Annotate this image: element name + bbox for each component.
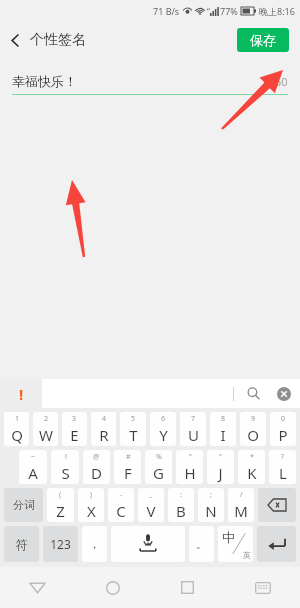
staticText: : bbox=[180, 490, 182, 500]
staticText: M bbox=[234, 501, 248, 521]
button[interactable]: Recents bbox=[150, 567, 225, 608]
staticText: X bbox=[87, 501, 96, 521]
staticText: D bbox=[91, 463, 102, 483]
staticText: 英 bbox=[243, 550, 251, 560]
button[interactable]: 4 bbox=[91, 412, 116, 446]
staticText: 4 bbox=[102, 414, 107, 424]
staticText: 123 bbox=[50, 536, 71, 552]
button[interactable]: " bbox=[207, 450, 234, 484]
staticText: 分词 bbox=[13, 498, 35, 512]
staticText: ! bbox=[19, 384, 24, 404]
button[interactable]: Language bbox=[218, 526, 253, 562]
staticText: 晚上8:16 bbox=[259, 5, 295, 17]
staticText: “ bbox=[207, 6, 210, 17]
staticText: 幸福快乐！ bbox=[12, 73, 77, 89]
button[interactable]: : bbox=[168, 488, 194, 522]
button[interactable]: Back bbox=[0, 567, 75, 608]
staticText: / bbox=[240, 490, 243, 500]
staticText: % bbox=[156, 452, 162, 462]
button[interactable]: - bbox=[108, 488, 134, 522]
staticText: Y bbox=[159, 425, 168, 445]
button[interactable]: Space bbox=[111, 526, 185, 562]
staticText: " bbox=[219, 452, 222, 462]
staticText: L bbox=[279, 463, 287, 483]
staticText: 。 bbox=[196, 537, 207, 551]
button[interactable]: 1 bbox=[4, 412, 29, 446]
button[interactable]: % bbox=[145, 450, 172, 484]
button[interactable]: Back bbox=[0, 25, 30, 55]
button[interactable]: ~ bbox=[19, 450, 47, 484]
button[interactable]: Backspace bbox=[258, 488, 296, 522]
staticText: * bbox=[250, 452, 254, 462]
staticText: 7 bbox=[191, 414, 196, 424]
button[interactable]: 。 bbox=[189, 526, 214, 562]
button[interactable]: ; bbox=[198, 488, 224, 522]
button[interactable]: # bbox=[114, 450, 141, 484]
staticText: R bbox=[99, 425, 109, 445]
button[interactable]: Clear bbox=[268, 379, 300, 408]
button[interactable]: 6 bbox=[150, 412, 176, 446]
button[interactable]: * bbox=[238, 450, 265, 484]
button[interactable]: 符 bbox=[4, 526, 39, 562]
staticText: 中 bbox=[222, 529, 235, 545]
staticText: F bbox=[124, 463, 132, 483]
staticText: H bbox=[184, 463, 196, 483]
staticText: G bbox=[153, 463, 164, 483]
staticText: @ bbox=[93, 452, 100, 462]
button[interactable]: 保存 bbox=[237, 28, 289, 52]
staticText: 8 bbox=[221, 414, 226, 424]
button[interactable]: Home bbox=[75, 567, 150, 608]
staticText: A bbox=[28, 463, 38, 483]
button[interactable]: ) bbox=[78, 488, 104, 522]
staticText: 1 bbox=[15, 414, 20, 424]
staticText: ? bbox=[281, 452, 285, 462]
staticText: ， bbox=[89, 537, 100, 551]
button[interactable]: Enter bbox=[257, 526, 296, 562]
button[interactable]: Hide keyboard bbox=[225, 567, 300, 608]
button[interactable]: 8 bbox=[210, 412, 236, 446]
staticText: " bbox=[189, 452, 192, 462]
staticText: C bbox=[116, 501, 126, 521]
staticText: 0 bbox=[281, 414, 286, 424]
button[interactable]: 5 bbox=[120, 412, 146, 446]
staticText: W bbox=[39, 425, 53, 445]
button[interactable]: 9 bbox=[240, 412, 266, 446]
button[interactable]: ( bbox=[47, 488, 74, 522]
button[interactable]: " bbox=[176, 450, 203, 484]
staticText: T bbox=[129, 425, 138, 445]
staticText: K bbox=[247, 463, 257, 483]
button[interactable]: 2 bbox=[33, 412, 58, 446]
button[interactable]: _ bbox=[138, 488, 164, 522]
button[interactable]: 0 bbox=[270, 412, 296, 446]
button[interactable]: 3 bbox=[62, 412, 87, 446]
button[interactable]: ! bbox=[51, 450, 79, 484]
staticText: 保存 bbox=[250, 32, 276, 48]
staticText: 77% bbox=[220, 5, 238, 17]
staticText: V bbox=[146, 501, 156, 521]
staticText: 2 bbox=[44, 414, 49, 424]
staticText: S bbox=[61, 463, 70, 483]
button[interactable]: Warning bbox=[0, 379, 42, 408]
button[interactable]: 7 bbox=[180, 412, 206, 446]
staticText: ( bbox=[59, 490, 62, 500]
button[interactable]: @ bbox=[83, 450, 110, 484]
staticText: 50 bbox=[275, 74, 288, 89]
staticText: 5 bbox=[131, 414, 136, 424]
staticText: J bbox=[218, 463, 223, 483]
button[interactable]: ， bbox=[82, 526, 107, 562]
staticText: I bbox=[220, 425, 226, 445]
staticText: ~ bbox=[31, 452, 36, 462]
staticText: 符 bbox=[16, 537, 28, 552]
button[interactable]: / bbox=[228, 488, 254, 522]
staticText: N bbox=[205, 501, 217, 521]
button[interactable]: 分词 bbox=[4, 488, 43, 522]
staticText: 9 bbox=[251, 414, 256, 424]
staticText: B bbox=[176, 501, 186, 521]
button[interactable]: ? bbox=[269, 450, 296, 484]
staticText: 71 B/s bbox=[153, 5, 180, 17]
staticText: O bbox=[247, 425, 259, 445]
staticText: _ bbox=[149, 490, 153, 500]
button[interactable]: 123 bbox=[43, 526, 78, 562]
button[interactable]: 幸福快乐！ bbox=[12, 73, 275, 89]
button[interactable]: Search bbox=[238, 379, 268, 408]
